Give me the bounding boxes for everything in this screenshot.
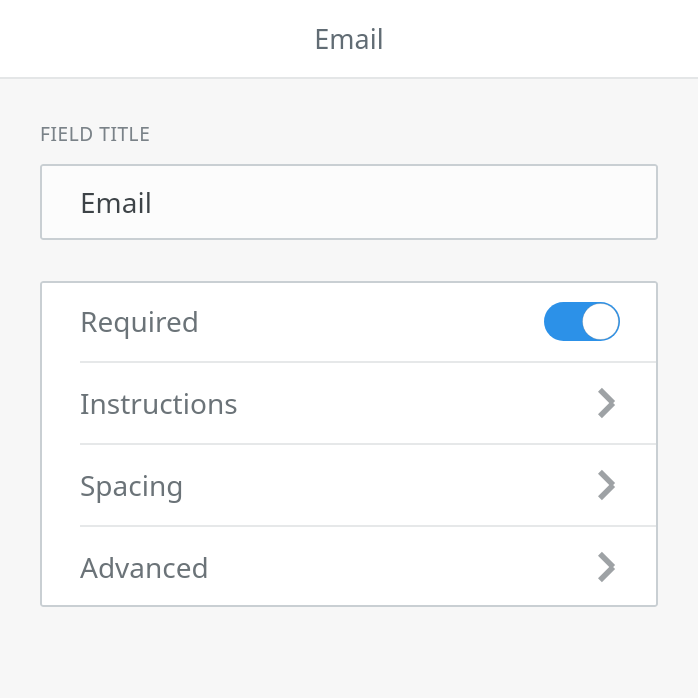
staticText: Email (314, 20, 384, 57)
button[interactable]: Spacing (40, 445, 658, 525)
button[interactable]: Email (40, 164, 658, 240)
button[interactable]: Required (40, 281, 658, 361)
button[interactable]: Required toggle, on (544, 302, 620, 341)
staticText: Email (80, 183, 152, 221)
button[interactable]: Instructions (40, 363, 658, 443)
staticText: FIELD TITLE (40, 121, 151, 147)
staticText: Advanced (80, 548, 209, 586)
staticText: Spacing (80, 466, 184, 504)
button[interactable]: Advanced (40, 527, 658, 607)
staticText: Required (80, 302, 199, 340)
staticText: Instructions (80, 384, 238, 422)
